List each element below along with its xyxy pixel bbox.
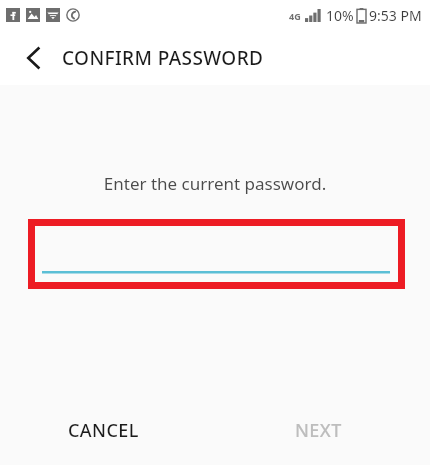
button[interactable]: CANCEL (46, 406, 161, 455)
staticText: 10% (326, 6, 354, 25)
staticText: 4G (289, 10, 301, 22)
button[interactable] (35, 226, 398, 282)
staticText: 9:53 PM (369, 6, 422, 25)
staticText: NEXT (295, 418, 342, 443)
staticText: Enter the current password. (0, 172, 430, 195)
staticText: CONFIRM PASSWORD (62, 45, 264, 71)
staticText: CANCEL (68, 418, 139, 443)
button[interactable]: Back (14, 38, 54, 78)
button[interactable]: NEXT (273, 406, 364, 455)
